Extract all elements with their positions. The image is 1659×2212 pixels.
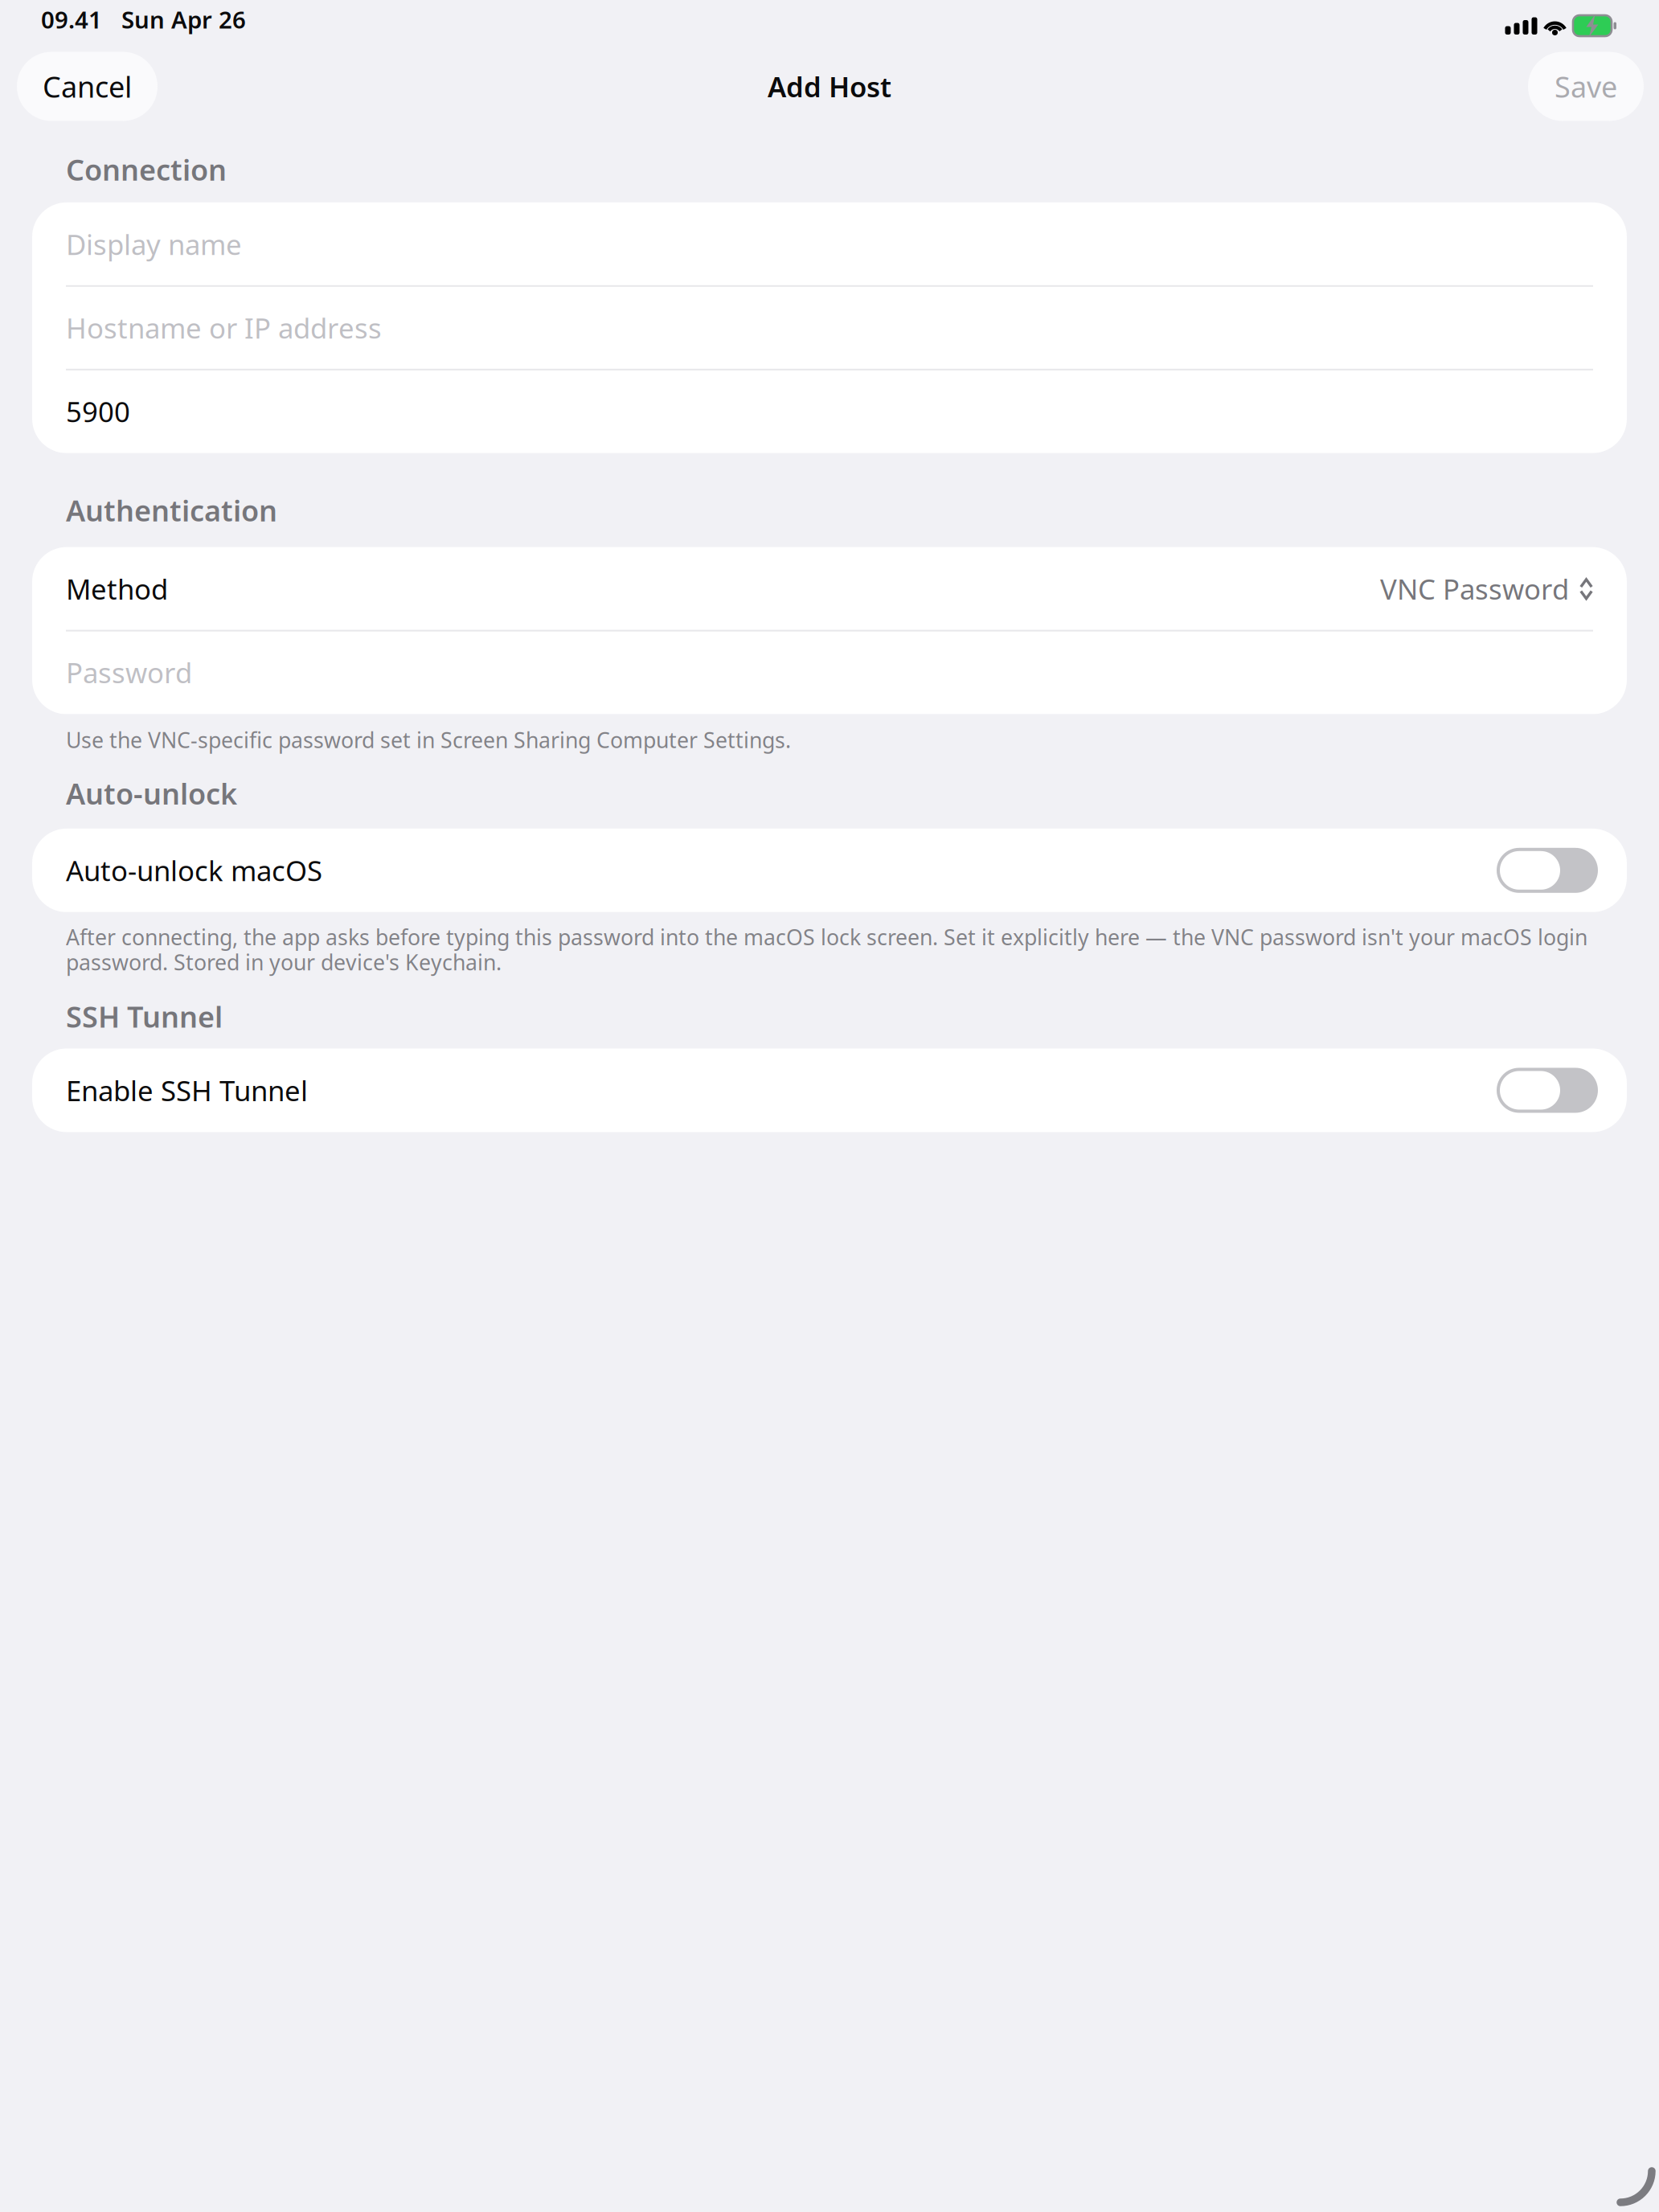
button[interactable]: Enable SSH Tunnel	[32, 1049, 1627, 1132]
staticText: Save	[1555, 67, 1617, 106]
staticText: Auto-unlock macOS	[66, 852, 322, 889]
staticText: password. Stored in your device's Keycha…	[66, 948, 502, 976]
staticText: Use the VNC-specific password set in Scr…	[66, 725, 791, 754]
staticText: VNC Password	[1380, 570, 1569, 607]
staticText: Password	[66, 654, 192, 691]
button[interactable]: Method	[32, 547, 1627, 631]
staticText: After connecting, the app asks before ty…	[66, 923, 1587, 951]
button[interactable]: 5900	[32, 370, 1627, 453]
button[interactable]: Hostname or IP address	[32, 286, 1627, 370]
staticText: 5900	[66, 393, 130, 430]
button[interactable]: Display name	[32, 202, 1627, 286]
staticText: Auto-unlock	[66, 774, 237, 812]
staticText: Display name	[66, 226, 242, 263]
staticText: Add Host	[768, 68, 891, 105]
button[interactable]: Auto-unlock macOS	[32, 829, 1627, 912]
staticText: Authentication	[66, 491, 277, 529]
button[interactable]: Cancel	[17, 52, 158, 121]
staticText: Enable SSH Tunnel	[66, 1072, 308, 1109]
staticText: SSH Tunnel	[66, 997, 223, 1036]
staticText: Sun Apr 26	[102, 4, 246, 35]
button[interactable]: Save	[1528, 52, 1644, 121]
staticText: 09.41	[41, 4, 102, 35]
staticText: Method	[66, 570, 168, 607]
staticText: Hostname or IP address	[66, 309, 382, 346]
staticText: Connection	[66, 150, 227, 189]
button[interactable]: Password	[32, 631, 1627, 714]
staticText: Cancel	[43, 67, 132, 106]
